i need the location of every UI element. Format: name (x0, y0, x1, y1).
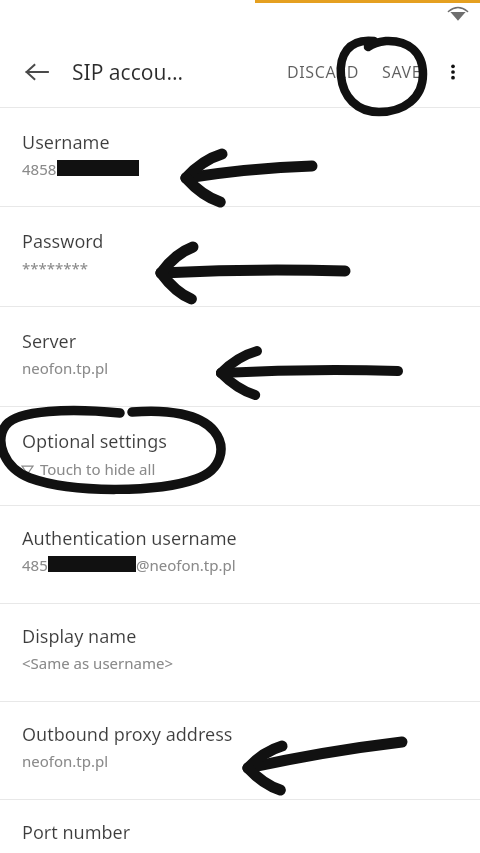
staticText: SAVE (382, 61, 422, 83)
button[interactable]: Navigate up (14, 49, 60, 95)
staticText: Authentication username (22, 526, 237, 551)
staticText: Optional settings (22, 429, 167, 454)
button[interactable]: Authentication username (0, 506, 480, 604)
button[interactable]: Username (0, 108, 480, 207)
staticText: neofon.tp.pl (22, 751, 109, 771)
staticText: DISCARD (287, 61, 360, 83)
button[interactable]: Optional settings (0, 407, 480, 506)
staticText: Display name (22, 624, 137, 649)
button[interactable]: Outbound proxy address (0, 702, 480, 800)
button[interactable]: Display name (0, 604, 480, 702)
staticText: 4858 (22, 159, 57, 179)
staticText: @neofon.tp.pl (136, 555, 236, 575)
button[interactable]: Password (0, 207, 480, 307)
button[interactable]: Port number (0, 800, 480, 853)
staticText: SIP accou… (72, 58, 184, 87)
staticText: neofon.tp.pl (22, 358, 109, 378)
staticText: Outbound proxy address (22, 722, 233, 747)
staticText: Username (22, 130, 110, 155)
staticText: Password (22, 229, 104, 254)
button[interactable]: SAVE (374, 51, 430, 93)
staticText: Touch to hide all (40, 459, 156, 479)
staticText: Port number (22, 820, 131, 845)
staticText: 485 (22, 555, 48, 575)
button[interactable]: DISCARD (279, 51, 368, 93)
staticText: <Same as username> (22, 653, 173, 673)
button[interactable]: More options (436, 55, 470, 89)
staticText: Server (22, 329, 77, 354)
staticText: ******** (22, 258, 89, 278)
button[interactable]: Server (0, 307, 480, 407)
